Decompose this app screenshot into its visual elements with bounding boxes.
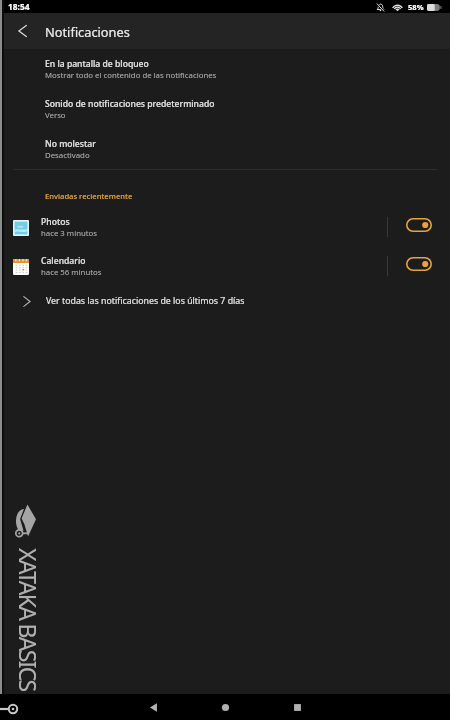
staticText: hace 3 minutos	[41, 228, 98, 239]
staticText: Verso	[45, 110, 66, 121]
button[interactable]: Home	[189, 694, 261, 720]
staticText: Photos	[41, 216, 70, 228]
button[interactable]: Recent apps	[261, 694, 333, 720]
staticText: Notificaciones	[45, 23, 130, 40]
staticText: XATAKA BASICS	[13, 548, 44, 691]
staticText: Sonido de notificaciones predeterminado	[45, 98, 215, 110]
button[interactable]: Back	[117, 694, 189, 720]
button[interactable]: No molestar	[0, 134, 450, 168]
button[interactable]: Toggle Photos notifications	[406, 218, 432, 232]
button[interactable]: Photos	[0, 210, 450, 244]
staticText: Enviadas recientemente	[45, 191, 133, 201]
button[interactable]: Sonido de notificaciones predeterminado	[0, 94, 450, 128]
staticText: Calendario	[41, 255, 86, 267]
staticText: 18:54	[8, 1, 30, 12]
button[interactable]: Back	[0, 13, 45, 49]
staticText: 58%	[408, 2, 424, 12]
staticText: Mostrar todo el contenido de las notific…	[45, 70, 217, 81]
button[interactable]: En la pantalla de bloqueo	[0, 54, 450, 88]
staticText: Ver todas las notificaciones de los últi…	[46, 295, 245, 307]
button[interactable]: Toggle Calendario notifications	[406, 257, 432, 271]
staticText: hace 56 minutos	[41, 267, 102, 278]
button[interactable]: Ver todas las notificaciones de los últi…	[0, 289, 450, 313]
button[interactable]: Calendario	[0, 249, 450, 283]
staticText: Desactivado	[45, 150, 90, 161]
staticText: No molestar	[45, 138, 96, 150]
staticText: En la pantalla de bloqueo	[45, 58, 149, 70]
